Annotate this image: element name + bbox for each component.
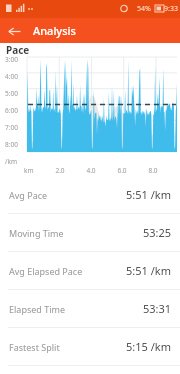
button[interactable]: Back [4, 21, 24, 41]
staticText: 8:00 [5, 140, 18, 149]
button[interactable]: Moving Time [0, 214, 180, 251]
staticText: 5:51 /km [126, 263, 171, 278]
staticText: 8.0 [148, 166, 158, 175]
staticText: 5:00 [5, 89, 18, 98]
staticText: 9:33 [164, 4, 178, 14]
staticText: Pace [6, 43, 30, 57]
staticText: Moving Time [9, 227, 64, 239]
staticText: Avg Pace [9, 189, 48, 201]
staticText: 2.0 [55, 166, 65, 175]
staticText: Fastest Split [9, 341, 60, 353]
staticText: 7:00 [5, 123, 18, 132]
staticText: 5:15 /km [126, 339, 171, 354]
staticText: 53:25 [142, 225, 171, 240]
button[interactable]: Avg Elapsed Pace [0, 252, 180, 289]
button[interactable]: Elapsed Time [0, 290, 180, 327]
staticText: /km [5, 157, 17, 166]
staticText: 3:00 [5, 55, 18, 64]
button[interactable]: Avg Pace [0, 176, 180, 213]
staticText: Avg Elapsed Pace [9, 265, 83, 277]
staticText: 4.0 [86, 166, 96, 175]
button[interactable]: Fastest Split [0, 328, 180, 365]
staticText: Analysis [33, 23, 76, 38]
staticText: 6:00 [5, 106, 18, 115]
staticText: 6.0 [117, 166, 127, 175]
staticText: 53:31 [142, 301, 171, 316]
staticText: 54% [137, 4, 151, 14]
staticText: 4:00 [5, 72, 18, 81]
staticText: km [24, 166, 34, 175]
staticText: 5:51 /km [126, 187, 171, 202]
staticText: Elapsed Time [9, 303, 65, 315]
